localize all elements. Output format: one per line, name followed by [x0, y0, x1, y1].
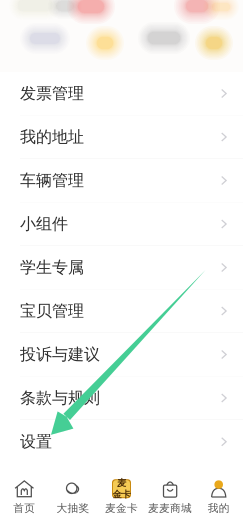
staticText: 发票管理 — [20, 84, 84, 103]
staticText: 金卡 — [112, 489, 130, 500]
button[interactable]: 宝贝管理 — [0, 289, 243, 333]
button[interactable]: 麦 — [97, 472, 146, 523]
button[interactable]: 小组件 — [0, 202, 243, 246]
staticText: 小组件 — [20, 214, 68, 234]
staticText: 车辆管理 — [20, 171, 84, 190]
staticText: 麦金卡 — [105, 502, 138, 515]
staticText: 麦 — [117, 477, 126, 489]
button[interactable]: 首页 — [0, 472, 49, 523]
staticText: 首页 — [13, 502, 35, 515]
staticText: 投诉与建议 — [20, 345, 100, 364]
staticText: 宝贝管理 — [20, 301, 84, 321]
staticText: 我的地址 — [20, 127, 84, 147]
staticText: 条款与规则 — [20, 388, 100, 408]
staticText: 设置 — [20, 432, 52, 452]
button[interactable]: 我的地址 — [0, 115, 243, 159]
staticText: 学生专属 — [20, 258, 84, 277]
staticText: 我的 — [208, 502, 230, 515]
button[interactable]: 大抽奖 — [49, 472, 97, 523]
button[interactable]: 设置 — [0, 420, 243, 463]
button[interactable]: 我的 — [194, 472, 243, 523]
staticText: 麦麦商城 — [148, 502, 192, 515]
button[interactable]: 条款与规则 — [0, 376, 243, 420]
button[interactable]: 麦麦商城 — [146, 472, 194, 523]
button[interactable]: 发票管理 — [0, 72, 243, 115]
button[interactable]: 投诉与建议 — [0, 333, 243, 376]
button[interactable]: 学生专属 — [0, 246, 243, 289]
button[interactable]: 车辆管理 — [0, 159, 243, 202]
staticText: 大抽奖 — [56, 502, 89, 515]
